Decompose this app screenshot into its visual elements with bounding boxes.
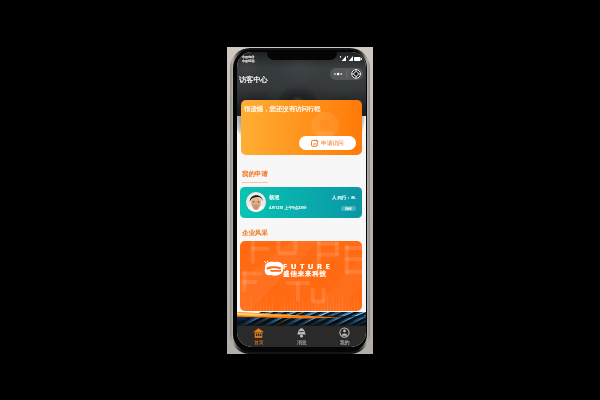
button[interactable]: FUTURE (240, 241, 362, 311)
button[interactable]: 我的 (323, 326, 366, 347)
button[interactable]: 首页 (237, 326, 280, 347)
staticText: 我的申请 (242, 170, 268, 178)
button[interactable]: 杨通 (240, 187, 362, 218)
staticText: 中国移动 (242, 59, 255, 63)
staticText: 详情 (345, 207, 352, 211)
button[interactable]: 申请访问 (299, 136, 356, 150)
staticText: 盛佳未来科技 (283, 270, 327, 278)
button[interactable]: 详情 (341, 206, 356, 211)
staticText: 我的 (340, 339, 350, 345)
button[interactable]: 消息 (280, 326, 323, 347)
staticText: 消息 (297, 339, 307, 345)
staticText: 中国电信 (242, 55, 255, 59)
staticText: 企业风采 (242, 229, 268, 237)
staticText: 访客中心 (239, 75, 268, 84)
staticText: 首页 (254, 339, 264, 345)
staticText: 很遗憾，您还没有访问行程 (244, 105, 321, 113)
button[interactable]: 很遗憾，您还没有访问行程 (241, 100, 362, 155)
staticText: 人 同行：无 (332, 194, 356, 200)
button[interactable]: More options and close (330, 68, 363, 80)
staticText: 杨通 (269, 194, 280, 201)
staticText: 4月12日 上午9点23分 (269, 205, 307, 210)
staticText: FUTURE (283, 261, 334, 271)
staticText: 申请访问 (321, 140, 344, 147)
